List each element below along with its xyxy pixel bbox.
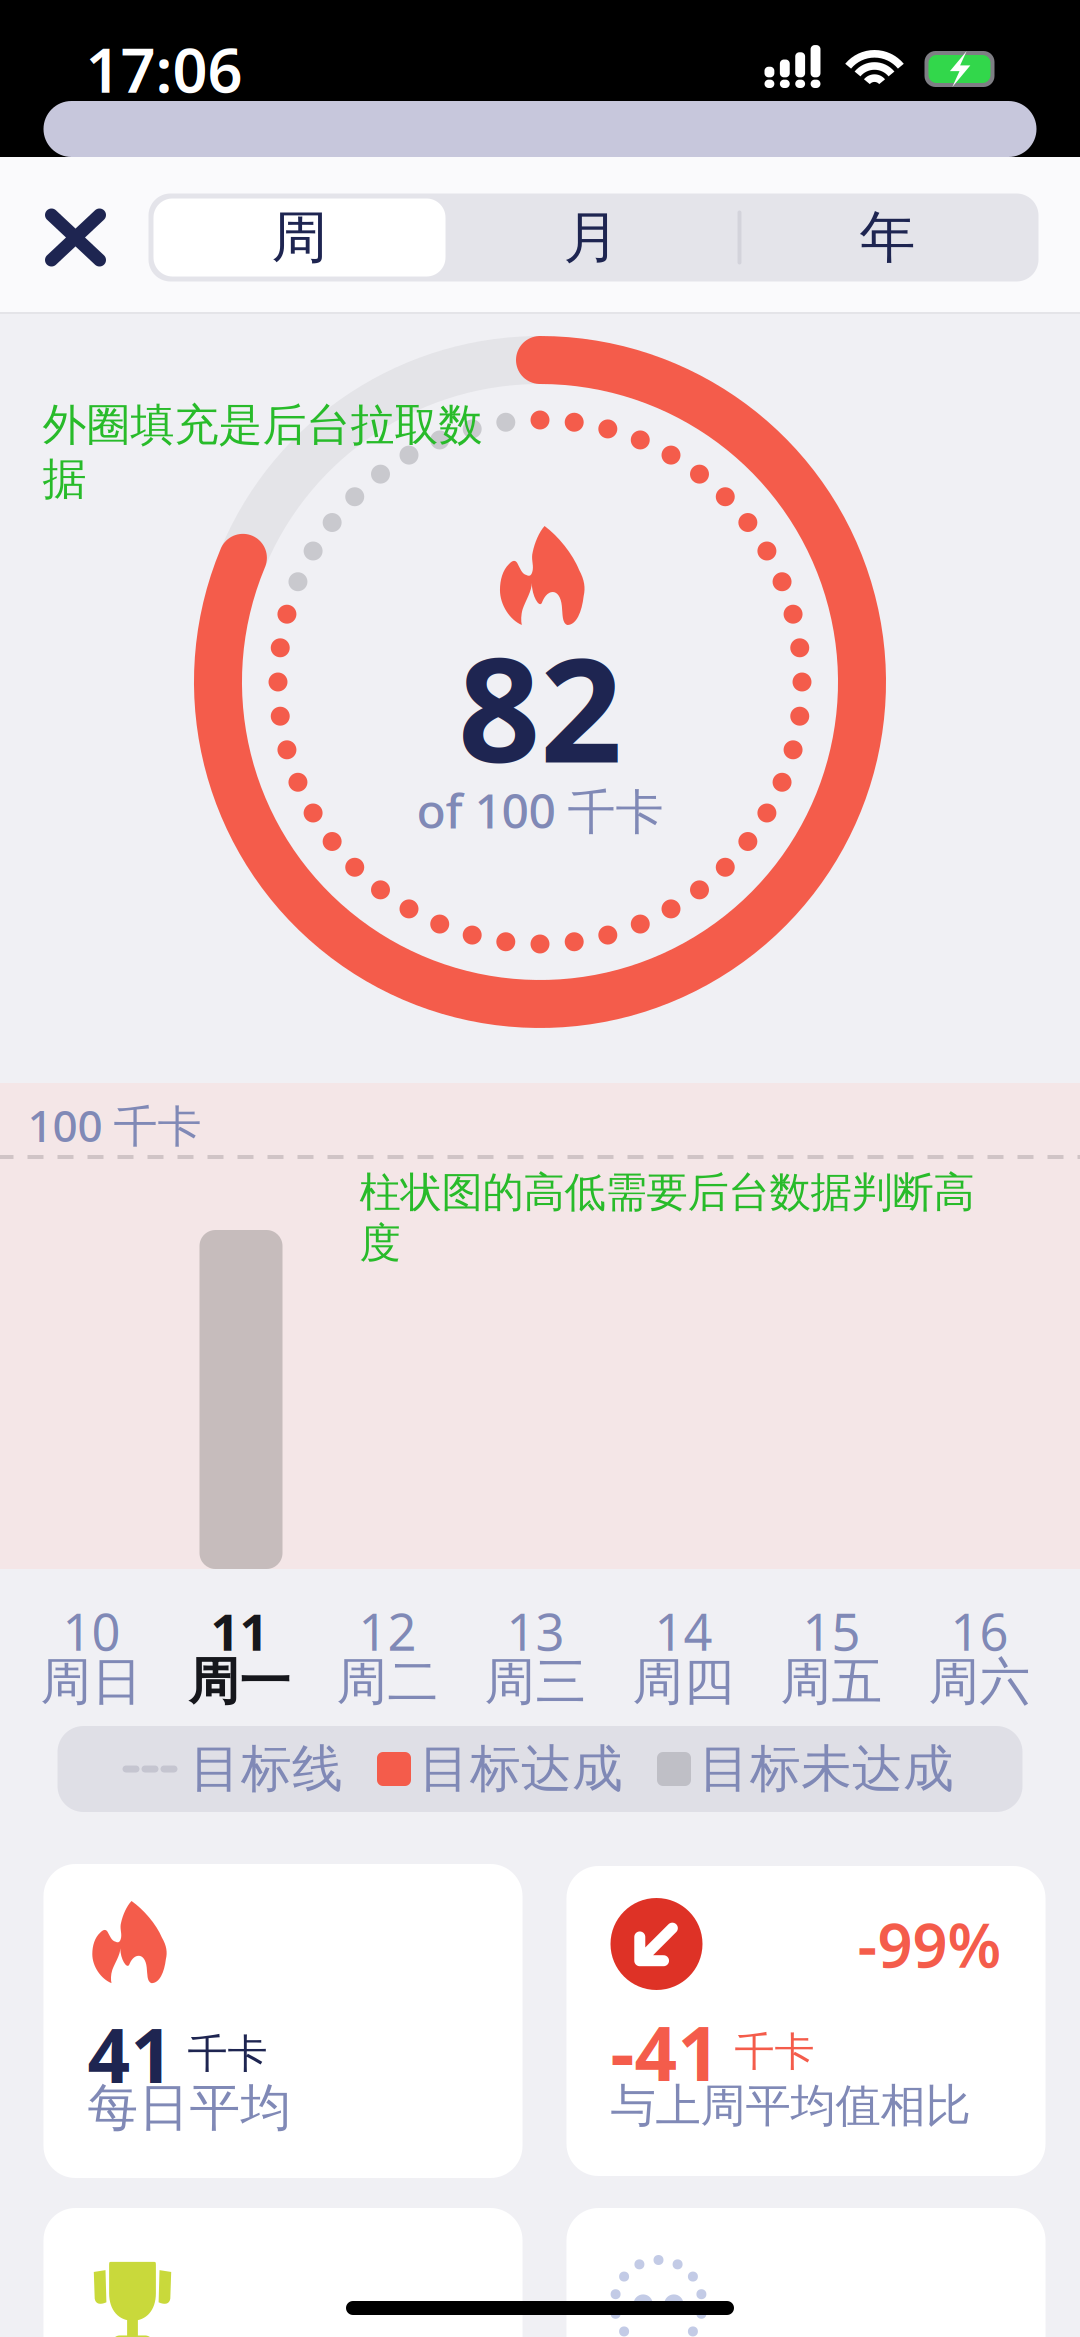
staticText: 13 [506,1597,564,1665]
staticText: 目标达成 [419,1738,623,1800]
staticText: 月 [563,203,619,272]
staticText: 17:06 [85,28,242,110]
staticText: 目标线 [190,1738,343,1800]
staticText: 千卡 [187,2029,267,2078]
staticText: 周日 [40,1651,142,1713]
button[interactable]: -99% [566,1866,1045,2176]
staticText: -99% [857,1903,1001,1985]
staticText: 11 [210,1597,268,1665]
staticText: 外圈填充是后台拉取数 据 [42,398,482,506]
staticText: 15 [802,1597,860,1665]
button[interactable]: 月 [445,198,737,276]
staticText: 41 [87,2004,173,2104]
staticText: 82 [458,611,622,802]
staticText: 周四 [632,1651,734,1713]
staticText: 柱状图的高低需要后台数据判断高 度 [359,1167,974,1268]
staticText: 周二 [336,1651,438,1713]
staticText: 千卡 [734,2027,814,2076]
staticText: 每日平均 [87,2077,291,2139]
staticText: 周六 [928,1651,1030,1713]
button[interactable]: 41 [43,1864,522,2178]
staticText: 100 千卡 [27,1096,201,1154]
staticText: 与上周平均值相比 [610,2078,970,2134]
button[interactable] [43,2208,522,2337]
staticText: -41 [610,2002,720,2102]
staticText: 12 [358,1597,416,1665]
staticText: 周五 [780,1651,882,1713]
staticText: 10 [62,1597,120,1665]
button[interactable]: 周 [153,198,445,276]
button[interactable]: 年 [741,198,1033,276]
staticText: 14 [654,1597,712,1665]
button[interactable]: 关闭 [0,193,148,282]
staticText: 周一 [188,1651,290,1713]
staticText: 周 [271,203,327,272]
staticText: 16 [950,1597,1008,1665]
staticText: 周三 [484,1651,586,1713]
button[interactable] [566,2208,1045,2337]
staticText: 年 [859,203,915,272]
staticText: of 100 千卡 [416,778,663,842]
staticText: 目标未达成 [699,1738,954,1800]
